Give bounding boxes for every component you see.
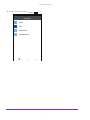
button[interactable] (14, 24, 41, 28)
button[interactable] (14, 28, 41, 32)
staticText: File Manager (39, 3, 52, 6)
staticText: Open file manager (9, 10, 28, 13)
button[interactable]: Back (14, 57, 23, 61)
button[interactable] (14, 32, 41, 36)
staticText: 1 (44, 113, 46, 116)
staticText: Internal (24, 17, 31, 19)
button[interactable]: Recents (32, 57, 41, 61)
button[interactable]: Home (23, 57, 32, 61)
button[interactable] (14, 20, 41, 24)
